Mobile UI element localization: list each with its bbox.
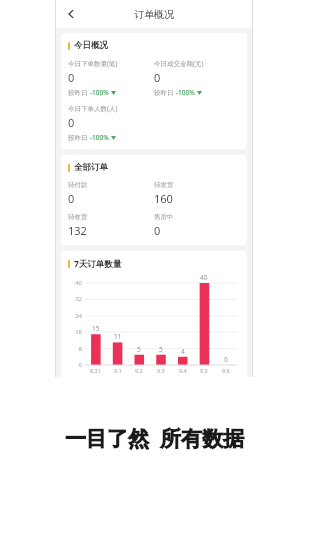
staticText: 9.3: [157, 367, 165, 374]
staticText: 全部订单: [74, 162, 108, 173]
staticText: -100%: [176, 88, 195, 97]
staticText: 今日下单人数(人): [68, 104, 118, 113]
staticText: 较昨日: [68, 88, 90, 97]
staticText: 0: [224, 355, 228, 364]
staticText: 40: [75, 279, 82, 287]
staticText: 9.1: [114, 367, 122, 374]
staticText: 0: [78, 361, 82, 369]
staticText: 待收货: [68, 213, 88, 221]
staticText: 订单概况: [134, 8, 174, 21]
staticText: 较昨日: [154, 88, 176, 97]
staticText: 9.5: [200, 367, 208, 374]
staticText: 9.4: [179, 367, 187, 374]
staticText: -100%: [90, 133, 109, 142]
button[interactable]: 今日概况: [61, 33, 247, 149]
button[interactable]: 7天订单数量: [61, 251, 247, 377]
staticText: 9.6: [222, 367, 230, 374]
staticText: 7天订单数量: [74, 258, 122, 270]
staticText: 0: [154, 70, 161, 85]
staticText: 今日成交金额(元): [154, 59, 204, 68]
button[interactable]: Back: [61, 4, 81, 24]
staticText: 5: [159, 345, 163, 354]
staticText: 15: [92, 324, 100, 333]
button[interactable]: 全部订单: [61, 155, 247, 245]
staticText: 一目了然 所有数据: [65, 424, 244, 453]
staticText: 0: [68, 70, 75, 85]
staticText: 16: [75, 328, 82, 336]
staticText: 4: [181, 347, 185, 356]
staticText: 8: [78, 345, 82, 353]
staticText: 0: [68, 191, 75, 206]
staticText: 待发货: [154, 181, 174, 189]
staticText: 0: [154, 223, 161, 238]
staticText: 24: [75, 312, 82, 320]
staticText: 11: [114, 332, 122, 341]
staticText: -100%: [90, 88, 109, 97]
staticText: 待付款: [68, 181, 88, 189]
staticText: 40: [200, 273, 208, 282]
staticText: 132: [68, 223, 87, 238]
staticText: 8.31: [90, 367, 101, 374]
staticText: 32: [75, 295, 82, 303]
staticText: 0: [68, 115, 75, 130]
staticText: 5: [137, 345, 141, 354]
staticText: 今日下单数量(笔): [68, 59, 118, 68]
staticText: 较昨日: [68, 133, 90, 142]
staticText: 售后中: [154, 213, 174, 221]
staticText: 160: [154, 191, 173, 206]
staticText: 9.2: [135, 367, 143, 374]
staticText: 今日概况: [74, 40, 108, 51]
